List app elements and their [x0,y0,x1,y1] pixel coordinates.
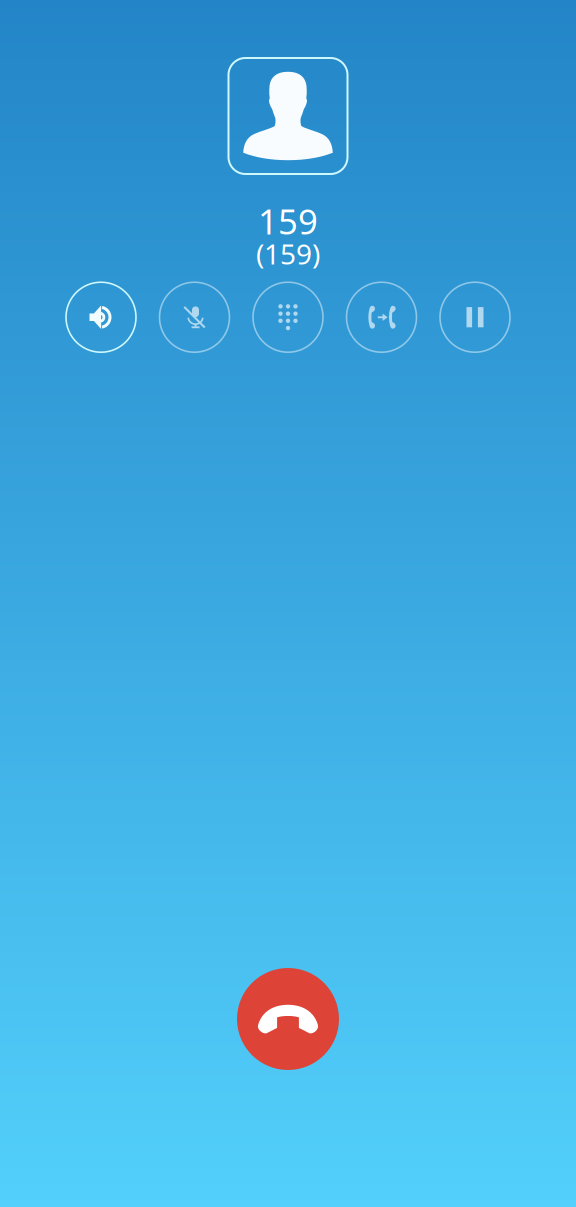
staticText: 159 [258,198,318,244]
button[interactable]: End call [237,968,339,1070]
button[interactable]: Speaker [66,282,136,352]
button[interactable]: Hold [440,282,510,352]
button[interactable]: Swap calls [346,282,416,352]
button[interactable]: Mute [159,282,229,352]
button[interactable]: Keypad [253,282,323,352]
staticText: (159) [256,235,320,272]
